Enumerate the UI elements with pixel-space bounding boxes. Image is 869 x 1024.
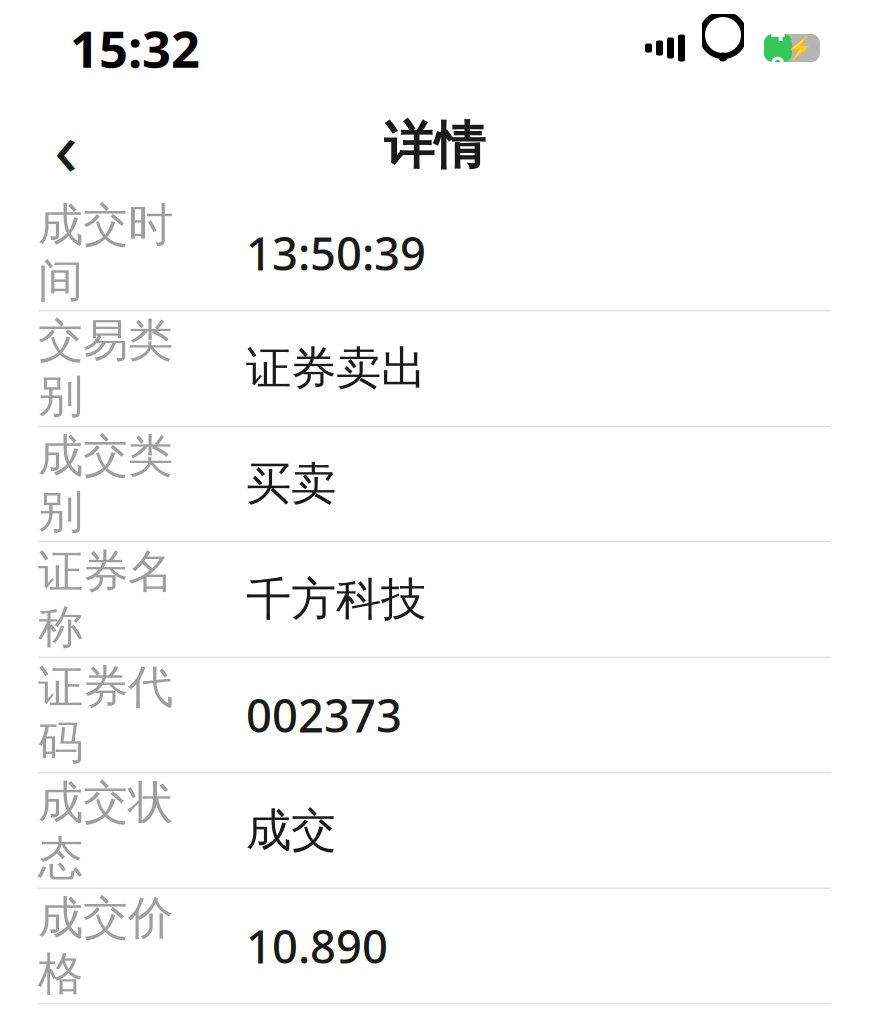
staticText: 买卖 [246, 456, 336, 512]
staticText: 成交类别 [38, 428, 173, 540]
staticText: 证券名称 [38, 544, 173, 655]
staticText: 10.890 [246, 916, 388, 976]
staticText: 49 [770, 14, 784, 82]
staticText: ⚡ [785, 35, 813, 61]
staticText: 13:50:39 [246, 223, 426, 283]
staticText: 证券卖出 [246, 341, 426, 396]
staticText: 002373 [246, 685, 402, 745]
staticText: ‹ [54, 95, 78, 197]
staticText: 15:32 [70, 14, 200, 82]
button[interactable]: 返回 [28, 108, 104, 184]
staticText: 成交状态 [38, 775, 173, 886]
staticText: 交易类别 [38, 313, 173, 424]
staticText: 千方科技 [246, 572, 426, 627]
staticText: 成交价格 [38, 890, 173, 1002]
staticText: 证券代码 [38, 659, 173, 771]
staticText: 成交 [246, 803, 336, 858]
staticText: 详情 [383, 115, 485, 177]
staticText: 成交时间 [38, 197, 173, 309]
